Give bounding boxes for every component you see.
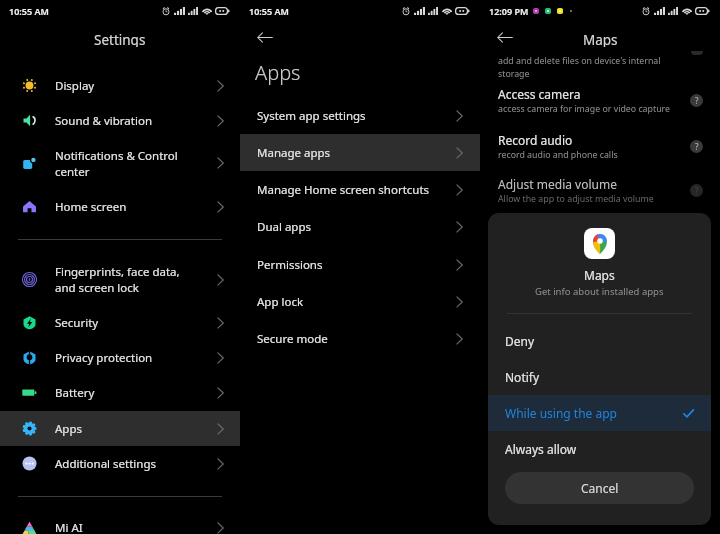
button[interactable]: Help about Adjust media volume (690, 184, 703, 197)
button[interactable]: Manage apps (240, 134, 480, 171)
button[interactable]: Security (0, 305, 240, 340)
staticText: Display (55, 78, 95, 94)
button[interactable]: Privacy protection (0, 340, 240, 375)
button[interactable]: While using the app (488, 395, 711, 431)
staticText: Sound & vibration (55, 113, 152, 129)
staticText: Apps (55, 421, 83, 437)
button[interactable]: Apps (0, 411, 240, 446)
staticText: Get info about installed apps (535, 285, 664, 298)
button[interactable]: Help about Access camera (690, 94, 703, 107)
staticText: 12:09 PM (489, 5, 529, 17)
button[interactable]: Notify (488, 359, 711, 395)
button[interactable]: Sound & vibration (0, 103, 240, 138)
staticText: 10:55 AM (249, 5, 289, 17)
staticText: ? (695, 185, 699, 196)
button[interactable]: Access camera (480, 84, 720, 116)
button[interactable]: Notifications & Control center (0, 138, 240, 188)
staticText: While using the app (505, 405, 617, 421)
button[interactable]: Help about Record audio (690, 140, 703, 153)
staticText: Maps (584, 267, 615, 283)
staticText: 10:55 AM (9, 5, 49, 17)
button[interactable]: Home screen (0, 189, 240, 224)
button[interactable]: Record audio (480, 130, 720, 162)
staticText: Manage apps (257, 145, 331, 161)
button[interactable]: Adjust media volume (480, 174, 720, 206)
staticText: Secure mode (257, 331, 328, 347)
staticText: Access camera (498, 86, 581, 102)
staticText: Additional settings (55, 456, 157, 472)
staticText: Maps (583, 31, 618, 47)
button[interactable]: Manage Home screen shortcuts (240, 171, 480, 208)
button[interactable]: Permissions (240, 246, 480, 283)
staticText: Cancel (581, 480, 619, 496)
staticText: Apps (255, 59, 301, 86)
staticText: Manage Home screen shortcuts (257, 182, 430, 198)
staticText: Adjust media volume (498, 176, 617, 192)
staticText: add and delete files on device's interna… (498, 55, 661, 79)
staticText: Fingerprints, face data, and screen lock (55, 264, 180, 295)
button[interactable]: App lock (240, 283, 480, 320)
button[interactable]: Cancel (505, 472, 694, 504)
button[interactable]: Dual apps (240, 208, 480, 245)
button[interactable]: Mi AI (0, 510, 240, 534)
button[interactable]: Battery (0, 375, 240, 410)
staticText: Dual apps (257, 219, 312, 235)
button[interactable]: System app settings (240, 97, 480, 134)
staticText: Notify (505, 369, 540, 385)
button[interactable]: Back (494, 26, 516, 48)
button[interactable]: Back (254, 26, 276, 48)
staticText: Record audio (498, 132, 573, 148)
staticText: Privacy protection (55, 350, 153, 366)
button[interactable]: Display (0, 68, 240, 103)
staticText: Home screen (55, 199, 127, 215)
button[interactable]: Always allow (488, 431, 711, 467)
staticText: Battery (55, 385, 95, 401)
button[interactable]: Deny (488, 323, 711, 359)
button[interactable]: Additional settings (0, 446, 240, 481)
staticText: record audio and phone calls (498, 149, 618, 161)
staticText: Settings (94, 31, 146, 47)
staticText: Notifications & Control center (55, 148, 178, 179)
staticText: Permissions (257, 257, 323, 273)
staticText: Mi AI (55, 520, 83, 534)
button[interactable]: Secure mode (240, 320, 480, 357)
staticText: access camera for image or video capture (498, 103, 670, 115)
staticText: ? (695, 141, 699, 152)
staticText: Deny (505, 333, 535, 349)
staticText: System app settings (257, 108, 366, 124)
staticText: Allow the app to adjust media volume (498, 193, 654, 205)
staticText: Always allow (505, 441, 577, 457)
staticText: ? (695, 95, 699, 106)
staticText: Security (55, 315, 99, 331)
button[interactable]: Fingerprints, face data, and screen lock (0, 255, 240, 304)
staticText: App lock (257, 294, 304, 310)
